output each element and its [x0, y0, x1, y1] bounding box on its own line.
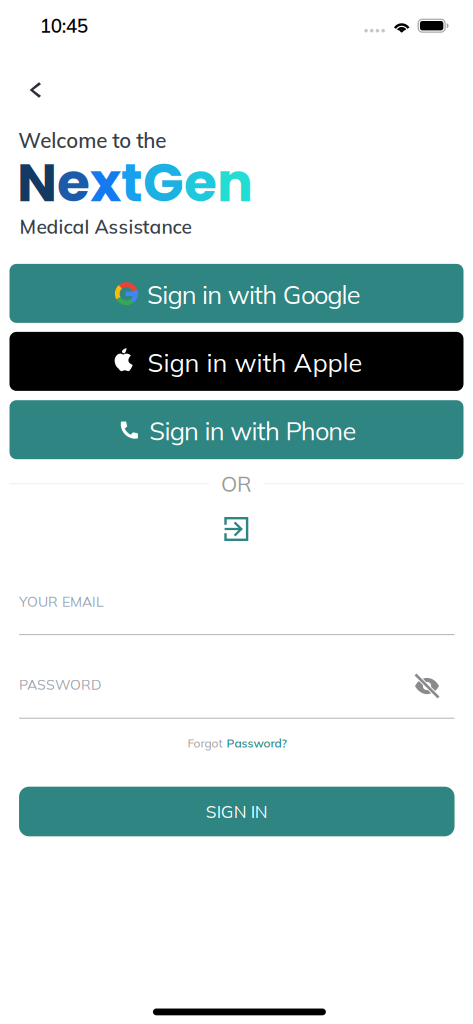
- staticText: e: [184, 145, 217, 220]
- staticText: e: [57, 145, 90, 220]
- button[interactable]: SIGN IN: [19, 787, 455, 836]
- staticText: Welcome to the: [18, 128, 166, 153]
- staticText: Sign in with Apple: [147, 346, 362, 378]
- staticText: YOUR EMAIL: [19, 593, 104, 610]
- button[interactable]: Back: [18, 70, 53, 110]
- staticText: SIGN IN: [206, 801, 268, 822]
- staticText: t: [121, 145, 143, 220]
- staticText: 10:45: [40, 14, 88, 38]
- staticText: Forgot: [187, 736, 222, 750]
- button[interactable]: Sign in with Phone: [9, 400, 463, 459]
- staticText: OR: [221, 470, 252, 497]
- button[interactable]: Sign in with Apple: [9, 332, 463, 391]
- staticText: PASSWORD: [19, 676, 101, 693]
- staticText: G: [143, 145, 184, 220]
- button[interactable]: Sign in: [216, 509, 256, 549]
- staticText: Sign in with Google: [147, 278, 361, 310]
- staticText: n: [217, 145, 253, 220]
- staticText: Sign in with Phone: [149, 415, 356, 447]
- staticText: Medical Assistance: [19, 214, 191, 238]
- button[interactable]: Show password: [406, 665, 448, 707]
- staticText: Password?: [226, 736, 286, 750]
- staticText: x: [90, 145, 121, 220]
- button[interactable]: Sign in with Google: [9, 264, 463, 323]
- button[interactable]: Forgot: [177, 729, 296, 757]
- staticText: N: [17, 145, 57, 220]
